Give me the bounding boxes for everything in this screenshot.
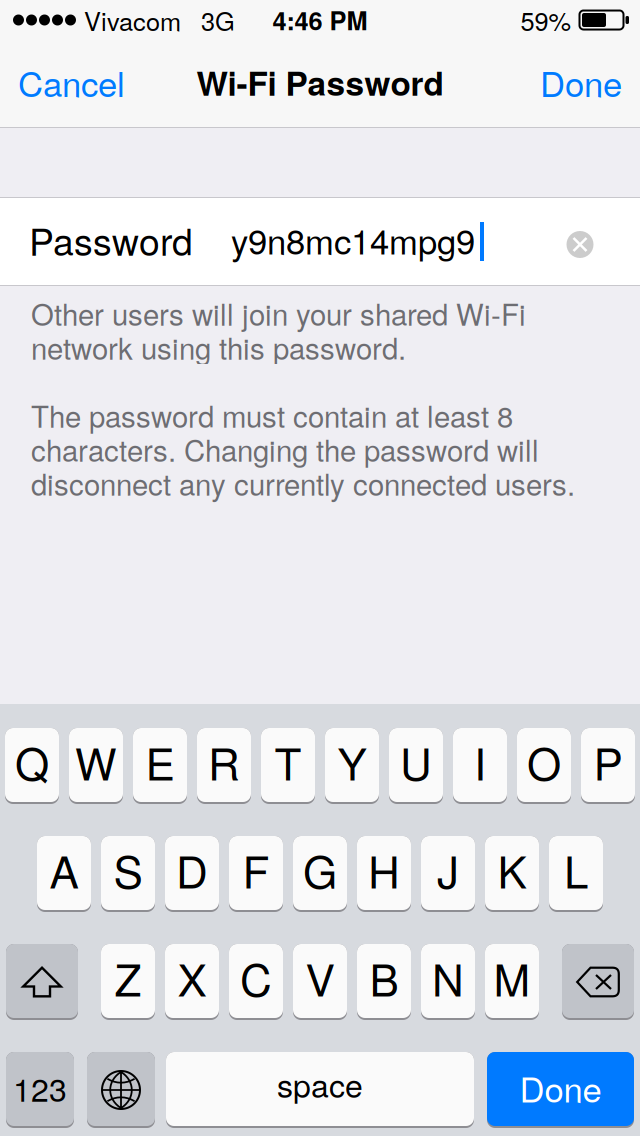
staticText: Q bbox=[15, 730, 49, 793]
button[interactable]: Done bbox=[487, 1052, 634, 1128]
button[interactable]: H bbox=[357, 836, 411, 912]
button[interactable]: R bbox=[197, 728, 251, 804]
button[interactable]: Done bbox=[522, 40, 640, 127]
button[interactable]: Delete bbox=[562, 944, 634, 1020]
staticText: 4:46 PM bbox=[272, 2, 367, 38]
staticText: D bbox=[176, 838, 208, 901]
staticText: 59% bbox=[520, 2, 571, 38]
staticText: P bbox=[593, 730, 622, 793]
staticText: 123 bbox=[13, 1065, 67, 1111]
button[interactable]: Q bbox=[5, 728, 59, 804]
button[interactable]: Next keyboard bbox=[87, 1052, 155, 1128]
button[interactable]: B bbox=[357, 944, 411, 1020]
button[interactable]: U bbox=[389, 728, 443, 804]
staticText: y9n8mc14mpg9 bbox=[231, 215, 475, 264]
button[interactable]: F bbox=[229, 836, 283, 912]
button[interactable]: J bbox=[421, 836, 475, 912]
button[interactable]: E bbox=[133, 728, 187, 804]
staticText: K bbox=[497, 838, 526, 901]
staticText: S bbox=[113, 838, 142, 901]
button[interactable]: P bbox=[581, 728, 635, 804]
button[interactable]: S bbox=[101, 836, 155, 912]
button[interactable]: N bbox=[421, 944, 475, 1020]
staticText: R bbox=[208, 730, 240, 793]
staticText: Done bbox=[540, 57, 622, 107]
button[interactable]: C bbox=[229, 944, 283, 1020]
button[interactable]: T bbox=[261, 728, 315, 804]
staticText: T bbox=[274, 730, 301, 793]
button[interactable]: Clear text bbox=[558, 216, 602, 266]
staticText: Cancel bbox=[18, 57, 125, 107]
button[interactable]: I bbox=[453, 728, 507, 804]
staticText: V bbox=[305, 946, 334, 1009]
staticText: I bbox=[474, 730, 486, 793]
staticText: disconnect any currently connected users… bbox=[31, 462, 575, 504]
button[interactable]: O bbox=[517, 728, 571, 804]
staticText: characters. Changing the password will bbox=[31, 428, 539, 470]
staticText: U bbox=[400, 730, 432, 793]
button[interactable]: 123 bbox=[6, 1052, 74, 1128]
staticText: Vivacom bbox=[84, 2, 181, 38]
staticText: H bbox=[368, 838, 400, 901]
staticText: Other users will join your shared Wi-Fi bbox=[31, 292, 526, 334]
button[interactable]: space bbox=[166, 1052, 474, 1128]
staticText: C bbox=[240, 946, 272, 1009]
staticText: G bbox=[303, 838, 337, 901]
button[interactable]: Y bbox=[325, 728, 379, 804]
staticText: Y bbox=[337, 730, 366, 793]
button[interactable]: Shift bbox=[6, 944, 78, 1020]
staticText: E bbox=[145, 730, 174, 793]
button[interactable]: D bbox=[165, 836, 219, 912]
staticText: 3G bbox=[201, 2, 235, 38]
button[interactable]: Cancel bbox=[0, 40, 143, 127]
button[interactable]: M bbox=[485, 944, 539, 1020]
staticText: J bbox=[437, 838, 459, 901]
staticText: Done bbox=[519, 1063, 601, 1112]
button[interactable]: G bbox=[293, 836, 347, 912]
staticText: F bbox=[242, 838, 269, 901]
staticText: network using this password. bbox=[31, 326, 406, 368]
button[interactable]: K bbox=[485, 836, 539, 912]
staticText: The password must contain at least 8 bbox=[31, 394, 513, 436]
staticText: M bbox=[493, 946, 530, 1009]
staticText: Wi-Fi Password bbox=[196, 58, 443, 106]
button[interactable]: A bbox=[37, 836, 91, 912]
staticText: X bbox=[177, 946, 206, 1009]
staticText: Z bbox=[114, 946, 141, 1009]
staticText: B bbox=[369, 946, 398, 1009]
button[interactable]: W bbox=[69, 728, 123, 804]
staticText: space bbox=[277, 1061, 363, 1107]
staticText: Password bbox=[29, 213, 193, 266]
button[interactable]: L bbox=[549, 836, 603, 912]
staticText: L bbox=[564, 838, 588, 901]
staticText: A bbox=[49, 838, 78, 901]
staticText: W bbox=[75, 730, 117, 793]
staticText: O bbox=[527, 730, 561, 793]
staticText: N bbox=[432, 946, 464, 1009]
button[interactable]: Z bbox=[101, 944, 155, 1020]
button[interactable]: V bbox=[293, 944, 347, 1020]
button[interactable]: X bbox=[165, 944, 219, 1020]
